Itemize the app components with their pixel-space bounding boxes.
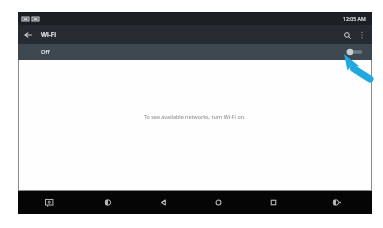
- button[interactable]: Volume down: [81, 191, 136, 214]
- button[interactable]: Wi-Fi toggle, Off: [344, 46, 364, 58]
- button[interactable]: Recents: [246, 191, 301, 214]
- button[interactable]: More options: [356, 27, 368, 43]
- staticText: Off: [41, 48, 50, 56]
- staticText: 12:05 AM: [343, 15, 366, 22]
- staticText: To see available networks, turn Wi-Fi on…: [144, 113, 246, 120]
- button[interactable]: Volume up: [301, 191, 372, 214]
- staticText: Wi-Fi: [41, 30, 56, 39]
- button[interactable]: Home: [191, 191, 246, 214]
- button[interactable]: Back: [18, 25, 37, 44]
- button[interactable]: Search: [338, 26, 356, 44]
- button[interactable]: Screenshot: [18, 191, 81, 214]
- button[interactable]: Off: [18, 44, 372, 60]
- button[interactable]: Back: [136, 191, 191, 214]
